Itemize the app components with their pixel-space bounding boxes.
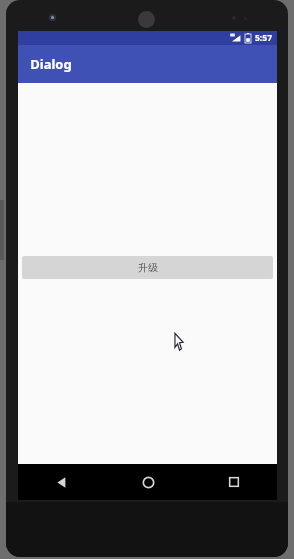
button[interactable]: Home [105,464,191,500]
button[interactable]: Recent apps [191,464,277,500]
staticText: 5:57 [255,32,272,44]
staticText: Dialog [30,55,72,73]
button[interactable]: Back [18,464,105,500]
staticText: 升级 [138,261,158,274]
button[interactable]: 升级 [22,256,273,279]
